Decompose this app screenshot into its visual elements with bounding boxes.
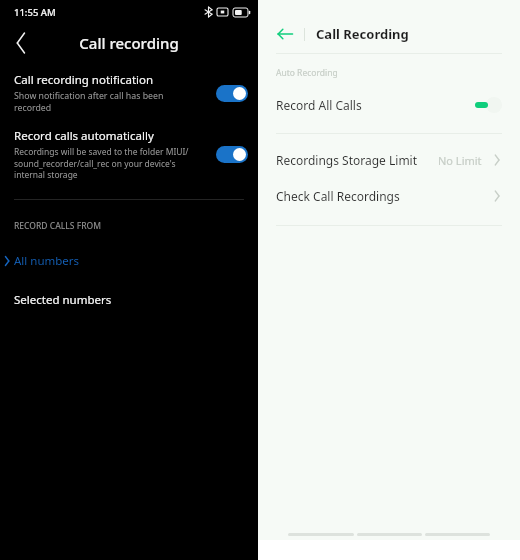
staticText: 11:55 AM [14,6,56,19]
button[interactable]: Record All Calls [258,91,520,119]
staticText: RECORD CALLS FROM [14,220,102,232]
button[interactable]: Call recording notification [0,72,258,114]
button[interactable]: Toggle on [216,85,248,102]
button[interactable]: Check Call Recordings [258,183,520,209]
staticText: Call Recording [316,25,409,43]
button[interactable]: Back [274,23,296,45]
button[interactable]: Selected numbers [0,287,258,313]
staticText: Recordings Storage Limit [276,152,438,168]
staticText: Show notification after call has been re… [14,90,164,114]
staticText: Record calls automatically [14,128,154,144]
button[interactable]: Toggle on [472,97,502,113]
staticText: Call recording notification [14,72,154,88]
button[interactable]: Record calls automatically [0,128,258,181]
button[interactable]: Back [8,30,34,56]
staticText: Record All Calls [276,97,472,113]
button[interactable]: Toggle on [216,146,248,163]
staticText: Auto Recording [276,67,338,79]
button[interactable]: All numbers [0,248,258,274]
staticText: Call recording [79,33,179,53]
staticText: Selected numbers [14,292,112,308]
staticText: All numbers [14,253,80,269]
staticText: Check Call Recordings [276,188,490,204]
button[interactable]: Recordings Storage Limit [258,147,520,173]
staticText: No Limit [438,153,482,168]
staticText: Recordings will be saved to the folder M… [14,146,189,181]
